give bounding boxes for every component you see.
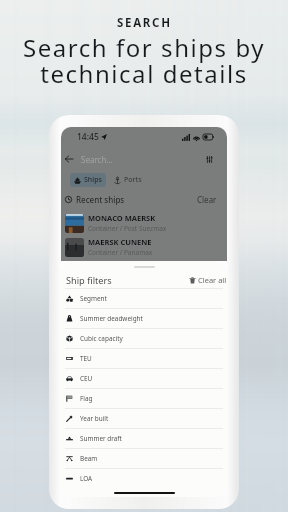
staticText: Search...: [81, 154, 113, 165]
staticText: Year built: [80, 414, 109, 423]
button[interactable]: Summer deadweight: [61, 309, 227, 328]
button[interactable]: Ports: [111, 173, 145, 187]
button[interactable]: Beam: [61, 449, 227, 468]
button[interactable]: Flag: [61, 389, 227, 408]
button[interactable]: Ships: [70, 173, 106, 187]
staticText: Container / Post Suezmax: [88, 224, 167, 233]
staticText: Recent ships: [76, 194, 125, 205]
staticText: Ships: [84, 175, 102, 185]
staticText: CEU: [80, 374, 93, 383]
button[interactable]: MONACO MAERSK: [61, 213, 227, 233]
button[interactable]: LOA: [61, 469, 227, 488]
staticText: LOA: [80, 474, 93, 483]
staticText: Summer draft: [80, 434, 122, 443]
staticText: TEU: [80, 354, 92, 363]
staticText: MAERSK CUNENE: [88, 237, 152, 247]
staticText: Container / Panamax: [88, 248, 153, 257]
button[interactable]: MAERSK CUNENE: [61, 237, 227, 257]
staticText: MONACO MAERSK: [88, 213, 156, 223]
staticText: SEARCH: [117, 15, 172, 31]
button[interactable]: TEU: [61, 349, 227, 368]
staticText: Summer deadweight: [80, 314, 143, 323]
button[interactable]: Segment: [61, 289, 227, 308]
staticText: 14:45: [77, 131, 99, 143]
button[interactable]: Cubic capacity: [61, 329, 227, 348]
button[interactable]: CEU: [61, 369, 227, 388]
staticText: Ports: [124, 175, 142, 185]
staticText: Search for ships by technical details: [0, 31, 288, 90]
button[interactable]: Clear: [197, 194, 217, 205]
button[interactable]: Filter: [203, 153, 216, 166]
button[interactable]: Clear all: [189, 273, 227, 287]
staticText: Beam: [80, 454, 98, 463]
button[interactable]: Year built: [61, 409, 227, 428]
button[interactable]: Summer draft: [61, 429, 227, 448]
button[interactable]: Back: [62, 152, 76, 166]
staticText: Segment: [80, 294, 107, 303]
staticText: Clear all: [198, 275, 227, 285]
staticText: Ship filters: [66, 274, 112, 287]
staticText: Flag: [80, 394, 93, 403]
staticText: Cubic capacity: [80, 334, 123, 343]
